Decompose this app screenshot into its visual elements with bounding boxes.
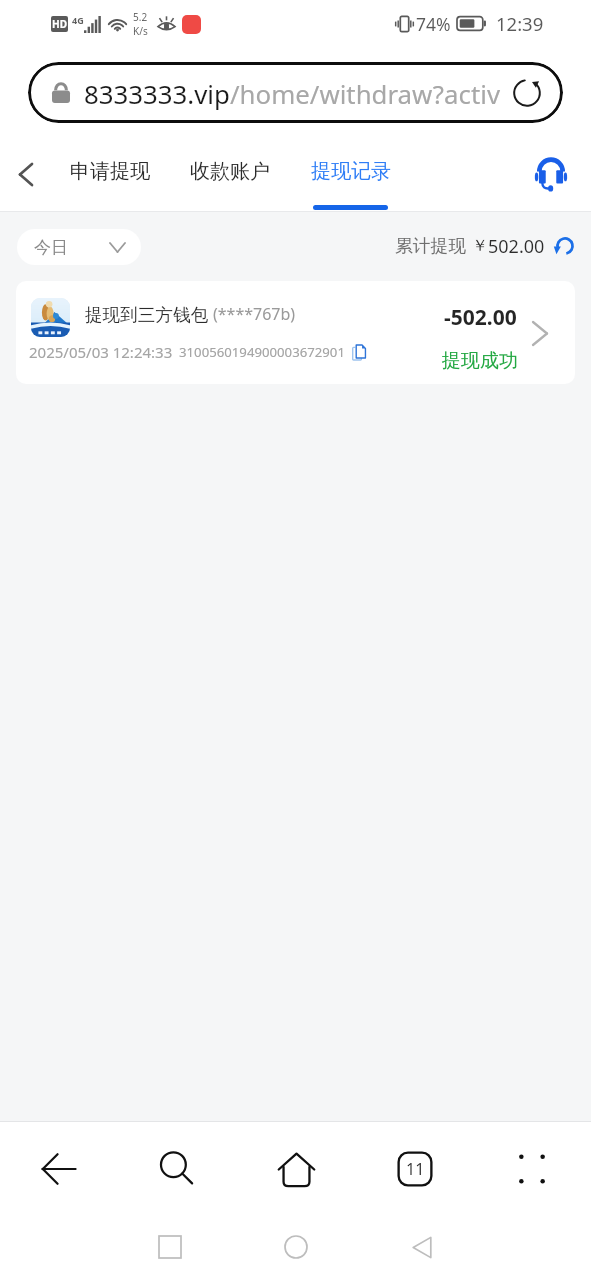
button[interactable]: 8333333.vip xyxy=(28,62,563,123)
staticText: K/s xyxy=(133,24,148,38)
button[interactable]: Home xyxy=(252,1127,340,1211)
button[interactable]: 今日 xyxy=(17,229,141,265)
button[interactable]: More xyxy=(488,1127,576,1211)
staticText: 提现到三方钱包 xyxy=(85,304,209,326)
button[interactable]: Recents xyxy=(107,1215,233,1279)
button[interactable]: Back xyxy=(15,1127,103,1211)
button[interactable]: 申请提现 xyxy=(63,145,156,205)
button[interactable]: Customer service xyxy=(531,154,571,194)
staticText: 累计提现 xyxy=(395,235,467,257)
button[interactable]: Home xyxy=(233,1215,359,1279)
staticText: 提现成功 xyxy=(442,349,518,373)
staticText: 申请提现 xyxy=(70,159,150,184)
button[interactable]: Search xyxy=(133,1127,221,1211)
staticText: -502.00 xyxy=(444,303,517,332)
staticText: 74% xyxy=(416,12,451,36)
staticText: 5.2 xyxy=(133,10,148,24)
staticText: 502.00 xyxy=(488,234,545,259)
staticText: /home/withdraw?activ xyxy=(230,76,500,111)
button[interactable]: 提现记录 xyxy=(305,145,396,205)
button[interactable]: Back xyxy=(3,152,47,196)
button[interactable]: Copy xyxy=(352,344,366,361)
button[interactable]: 提现到三方钱包 xyxy=(16,281,575,384)
staticText: (****767b) xyxy=(213,303,296,325)
button[interactable]: Refresh xyxy=(552,233,578,259)
staticText: ￥ xyxy=(472,236,488,256)
button[interactable]: 收款账户 xyxy=(183,145,276,205)
staticText: 11 xyxy=(406,1158,425,1180)
staticText: 今日 xyxy=(34,237,68,258)
staticText: 提现记录 xyxy=(311,159,391,184)
staticText: 收款账户 xyxy=(190,159,270,184)
staticText: 2025/05/03 12:24:33 xyxy=(29,342,173,362)
button[interactable]: Tabs: 11 open xyxy=(371,1127,459,1211)
staticText: 8333333.vip xyxy=(84,76,230,111)
staticText: 4G xyxy=(72,14,84,26)
button[interactable]: Back xyxy=(359,1215,485,1279)
button[interactable]: Reload page xyxy=(509,75,545,111)
staticText: HD xyxy=(52,17,67,31)
staticText: 3100560194900003672901 xyxy=(179,343,345,361)
staticText: 12:39 xyxy=(496,11,544,36)
